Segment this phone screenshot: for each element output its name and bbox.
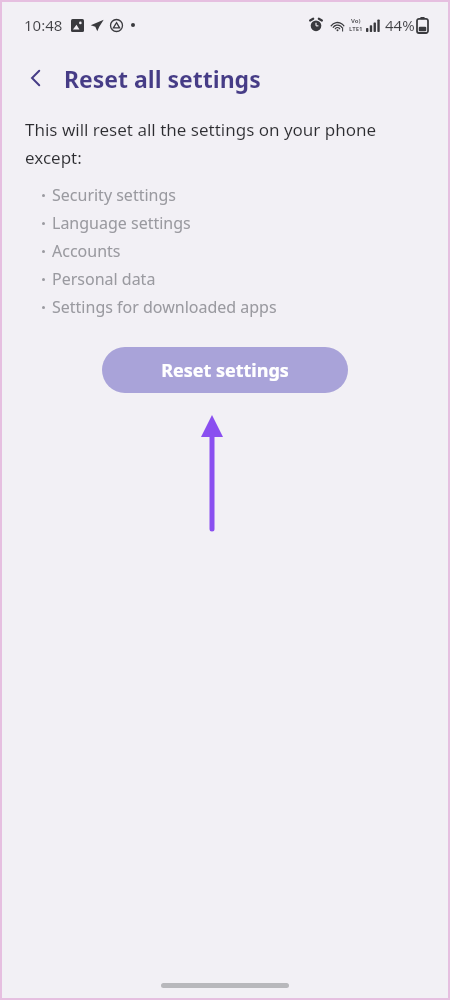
staticText: Accounts [52,240,121,262]
staticText: Settings for downloaded apps [52,296,277,318]
staticText: 10:48 [24,15,63,35]
staticText: 44% [385,15,415,35]
staticText: Personal data [52,268,156,290]
button[interactable]: Back [20,62,52,94]
staticText: Reset settings [161,358,289,383]
staticText: Vo) [351,17,361,25]
staticText: Reset all settings [64,63,261,94]
button[interactable]: Reset settings [102,347,348,393]
staticText: This will reset all the settings on your… [25,118,390,169]
staticText: Language settings [52,212,191,234]
staticText: LTE1 [349,25,363,33]
staticText: Security settings [52,184,176,206]
